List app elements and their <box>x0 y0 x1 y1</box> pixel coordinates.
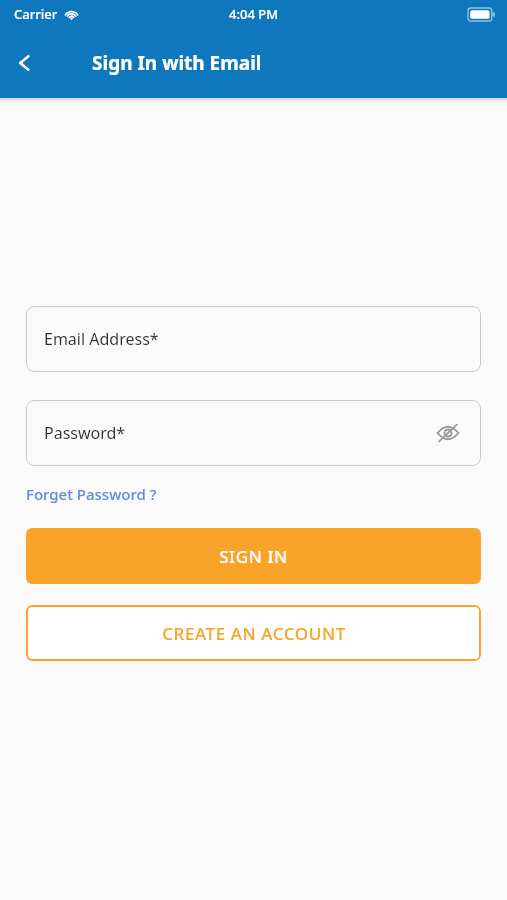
staticText: Carrier <box>14 5 58 23</box>
button[interactable]: SIGN IN <box>26 528 481 584</box>
staticText: Forget Password ? <box>26 484 157 504</box>
button[interactable]: CREATE AN ACCOUNT <box>26 605 481 661</box>
button[interactable]: Password* <box>26 400 481 466</box>
button[interactable]: Back <box>0 37 52 89</box>
staticText: CREATE AN ACCOUNT <box>162 622 346 645</box>
button[interactable]: Show password <box>431 416 465 450</box>
staticText: SIGN IN <box>219 545 288 568</box>
button[interactable]: Forget Password ? <box>26 482 157 506</box>
staticText: Password* <box>44 422 126 444</box>
staticText: Email Address* <box>44 328 159 350</box>
staticText: 4:04 PM <box>229 5 279 23</box>
staticText: Sign In with Email <box>92 50 262 76</box>
button[interactable]: Email Address* <box>26 306 481 372</box>
